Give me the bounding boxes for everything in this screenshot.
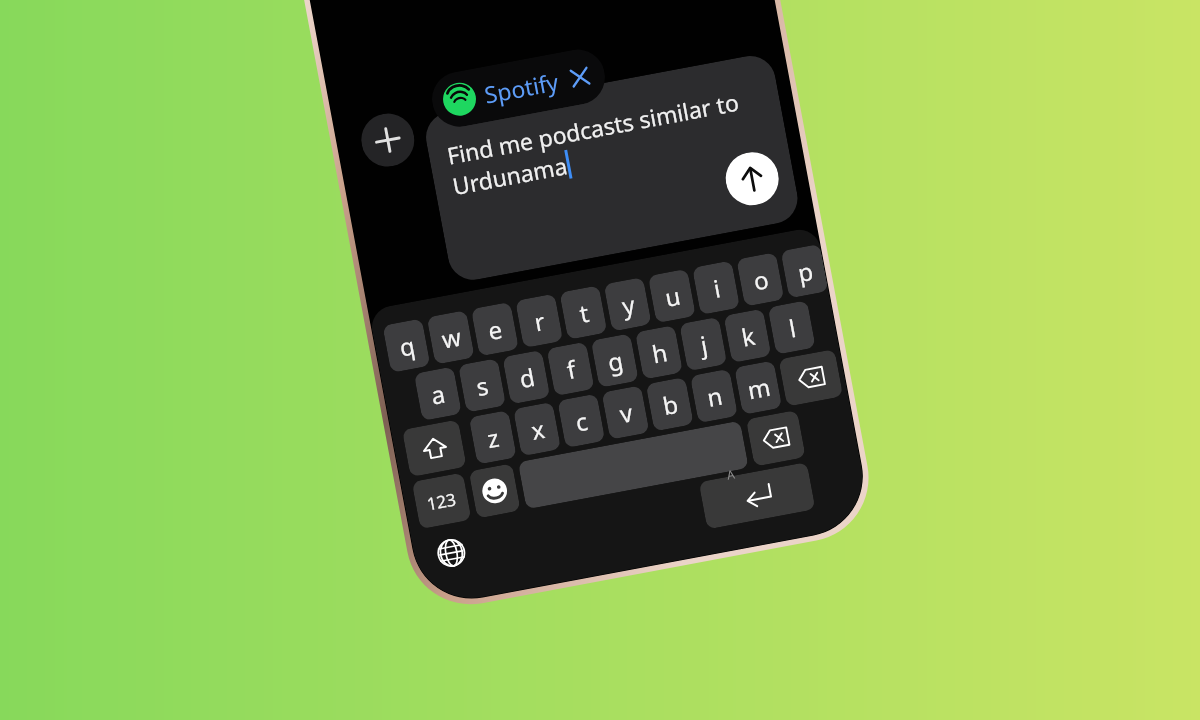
- staticText: f: [564, 352, 579, 386]
- button[interactable]: Delete: [746, 410, 806, 467]
- staticText: b: [660, 387, 681, 422]
- button[interactable]: s: [458, 358, 506, 413]
- button[interactable]: b: [646, 377, 694, 431]
- button[interactable]: 123: [412, 472, 471, 529]
- staticText: v: [617, 395, 635, 430]
- button[interactable]: Send message: [721, 148, 783, 210]
- button[interactable]: Shift: [402, 419, 467, 477]
- staticText: s: [473, 369, 491, 403]
- button[interactable]: Space: [518, 421, 749, 509]
- staticText: n: [704, 379, 725, 414]
- button[interactable]: y: [604, 277, 652, 331]
- staticText: p: [795, 254, 815, 289]
- other: Remove Spotify attachment: [571, 68, 589, 86]
- button[interactable]: z: [469, 410, 517, 465]
- button[interactable]: t: [559, 285, 607, 340]
- staticText: g: [605, 343, 626, 379]
- staticText: i: [710, 271, 723, 305]
- staticText: w: [439, 320, 464, 356]
- button[interactable]: l: [768, 300, 816, 355]
- button[interactable]: Switch keyboard language: [421, 525, 481, 581]
- button[interactable]: o: [736, 252, 784, 307]
- button[interactable]: g: [591, 333, 639, 388]
- staticText: r: [531, 304, 547, 338]
- staticText: Urdunama: [450, 149, 570, 201]
- button[interactable]: Spotify: [427, 45, 609, 131]
- staticText: u: [662, 279, 683, 314]
- button[interactable]: n: [690, 369, 738, 423]
- staticText: o: [750, 262, 771, 297]
- staticText: c: [572, 404, 590, 438]
- staticText: y: [619, 287, 638, 322]
- staticText: x: [528, 412, 547, 447]
- button[interactable]: r: [515, 293, 563, 348]
- button[interactable]: x: [513, 402, 561, 456]
- staticText: q: [397, 328, 417, 364]
- button[interactable]: h: [635, 325, 683, 379]
- staticText: t: [576, 296, 591, 330]
- staticText: l: [786, 311, 799, 345]
- button[interactable]: [422, 52, 802, 284]
- button[interactable]: d: [502, 350, 550, 404]
- button[interactable]: j: [679, 317, 727, 371]
- staticText: m: [744, 370, 773, 406]
- button[interactable]: f: [546, 342, 595, 396]
- staticText: z: [484, 420, 502, 455]
- staticText: Spotify: [482, 65, 561, 110]
- button[interactable]: e: [471, 302, 519, 356]
- button[interactable]: Backspace: [778, 349, 843, 407]
- staticText: Find me podcasts similar to: [444, 85, 742, 171]
- button[interactable]: m: [734, 360, 782, 415]
- button[interactable]: Enter: [699, 462, 816, 529]
- button[interactable]: q: [382, 318, 430, 373]
- button[interactable]: k: [723, 308, 771, 363]
- staticText: a: [428, 377, 448, 412]
- staticText: 123: [425, 487, 458, 515]
- button[interactable]: c: [557, 393, 605, 448]
- button[interactable]: a: [414, 366, 462, 421]
- button[interactable]: p: [780, 244, 829, 298]
- staticText: e: [485, 312, 505, 347]
- button[interactable]: v: [601, 385, 649, 440]
- button[interactable]: u: [648, 269, 696, 323]
- staticText: A: [725, 466, 736, 483]
- button[interactable]: Add attachment: [357, 109, 419, 171]
- button[interactable]: Emoji: [469, 463, 521, 519]
- button[interactable]: i: [692, 260, 740, 315]
- staticText: d: [516, 360, 537, 395]
- staticText: k: [739, 319, 757, 353]
- staticText: h: [649, 335, 670, 370]
- staticText: j: [697, 328, 710, 361]
- button[interactable]: w: [427, 310, 475, 365]
